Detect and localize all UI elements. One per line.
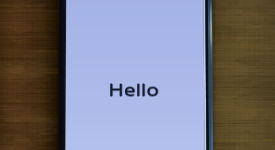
staticText: Hello (108, 80, 159, 102)
staticText: Hello (109, 79, 160, 101)
staticText: Hello (108, 78, 159, 100)
staticText: Hello (108, 79, 159, 101)
staticText: Hello (108, 79, 159, 101)
